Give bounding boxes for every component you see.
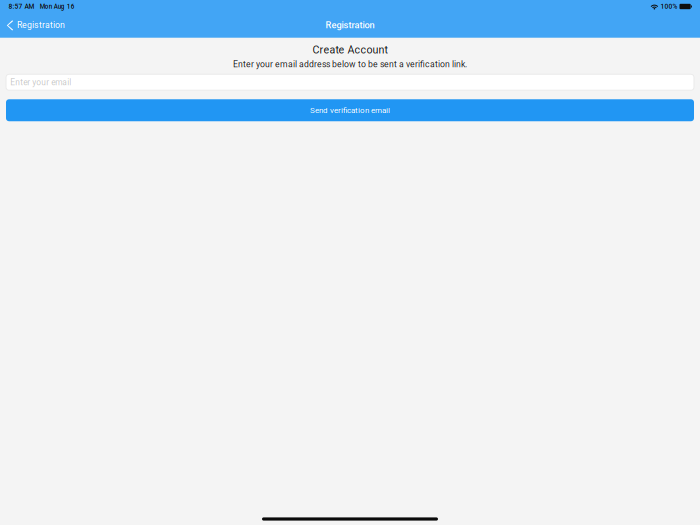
staticText: Create Account [312, 44, 387, 56]
staticText: Registration [325, 19, 374, 30]
staticText: Enter your email address below to be sen… [233, 59, 467, 69]
button[interactable]: Send verification email [6, 99, 694, 121]
staticText: Enter your email [10, 77, 71, 87]
staticText: Mon Aug 16 [40, 3, 75, 10]
button[interactable]: Enter your email [6, 74, 694, 90]
staticText: Registration [17, 20, 65, 30]
button[interactable]: Back to Registration [0, 13, 73, 37]
staticText: 100% [660, 3, 677, 10]
staticText: 8:57 AM [9, 3, 35, 10]
staticText: Send verification email [310, 106, 390, 115]
